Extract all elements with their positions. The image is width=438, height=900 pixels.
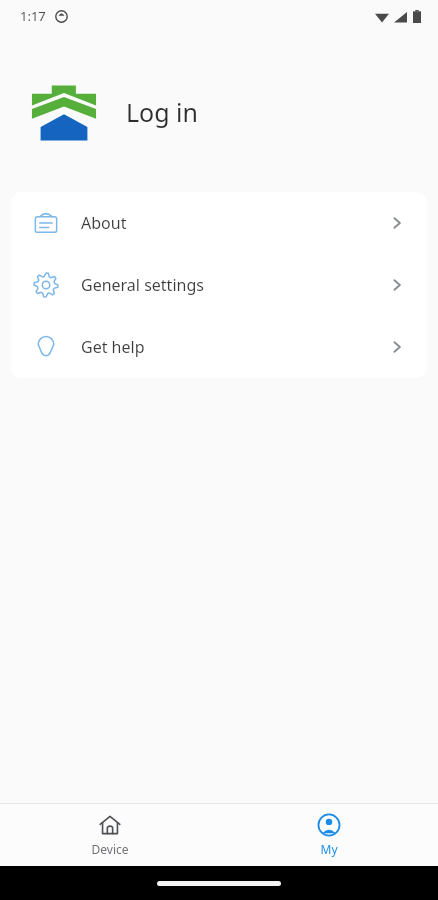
staticText: General settings — [81, 274, 204, 296]
staticText: Get help — [81, 336, 145, 358]
staticText: Device — [91, 841, 129, 857]
button[interactable]: Device — [0, 813, 219, 857]
staticText: Log in — [126, 95, 199, 129]
button[interactable]: General settings — [11, 254, 427, 316]
staticText: About — [81, 212, 127, 234]
button[interactable]: About — [11, 192, 427, 254]
staticText: 1:17 — [20, 7, 46, 25]
button[interactable]: Get help — [11, 316, 427, 378]
button[interactable]: My — [219, 813, 438, 857]
staticText: My — [320, 841, 338, 857]
